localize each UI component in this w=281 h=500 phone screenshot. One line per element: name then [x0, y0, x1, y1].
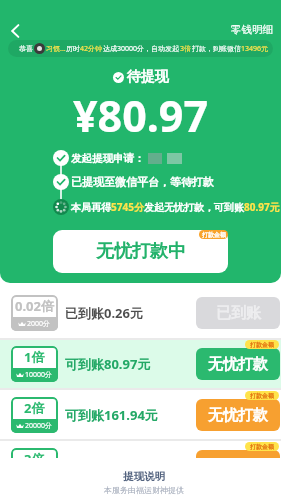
staticText: 达成30000分，自动发起 — [103, 44, 180, 54]
staticText: 打款金额 — [250, 341, 274, 349]
staticText: 待提现 — [127, 68, 169, 86]
button[interactable]: 已到账 — [196, 297, 280, 329]
staticText: 历时 — [66, 44, 80, 53]
staticText: 本服务由福运财神提供 — [104, 485, 184, 495]
staticText: 发起无忧打款，可到账 — [144, 201, 244, 214]
button[interactable]: 1倍 — [0, 340, 281, 388]
button[interactable]: 3倍 — [0, 441, 281, 490]
button[interactable]: Back — [2, 18, 28, 44]
button[interactable]: 0.02倍 — [0, 283, 281, 338]
staticText: 2000分 — [27, 319, 51, 329]
button[interactable]: 零钱明细 — [229, 22, 275, 37]
staticText: 0.02倍 — [15, 297, 54, 315]
button[interactable]: 无忧打款 — [196, 399, 280, 431]
staticText: 20000分 — [25, 421, 53, 431]
staticText: 无忧打款 — [208, 457, 268, 476]
staticText: 本局再得 — [71, 201, 111, 214]
staticText: 打款金额 — [250, 443, 274, 451]
staticText: 13496元 — [241, 44, 269, 54]
staticText: 无忧打款 — [208, 406, 268, 425]
staticText: 可到账161.94元 — [65, 406, 158, 424]
staticText: ¥80.97 — [73, 86, 209, 145]
staticText: 打款，到账微信 — [192, 44, 241, 53]
staticText: 打款金额 — [202, 231, 226, 239]
button[interactable]: 2倍 — [0, 390, 281, 439]
staticText: 可到账80.97元 — [65, 355, 151, 373]
staticText: 42分钟 — [80, 44, 103, 54]
staticText: 无忧打款中 — [96, 240, 186, 263]
staticText: 已到账 — [216, 304, 261, 323]
button[interactable]: 提现说明 — [123, 470, 165, 483]
staticText: 3倍 — [180, 44, 192, 54]
staticText: 习惯... — [46, 44, 66, 54]
staticText: 无忧打款 — [208, 355, 268, 374]
staticText: 已提现至微信平台，等待打款 — [71, 175, 214, 189]
staticText: 2倍 — [24, 399, 45, 417]
button[interactable]: 无忧打款 — [196, 450, 280, 482]
staticText: 打款金额 — [250, 392, 274, 400]
staticText: 已到账0.26元 — [65, 304, 143, 322]
staticText: 5745分 — [111, 200, 144, 214]
staticText: 3倍 — [24, 450, 45, 468]
staticText: 80.97元 — [244, 200, 280, 214]
button[interactable]: 无忧打款中 — [53, 230, 228, 273]
staticText: 1倍 — [24, 348, 45, 366]
staticText: 恭喜 — [19, 44, 33, 53]
staticText: 10000分 — [25, 370, 53, 380]
staticText: 零钱明细 — [231, 23, 273, 36]
button[interactable]: 无忧打款 — [196, 348, 280, 380]
staticText: 可到账242.91元 — [65, 457, 158, 475]
staticText: 发起提现申请： — [71, 152, 145, 165]
